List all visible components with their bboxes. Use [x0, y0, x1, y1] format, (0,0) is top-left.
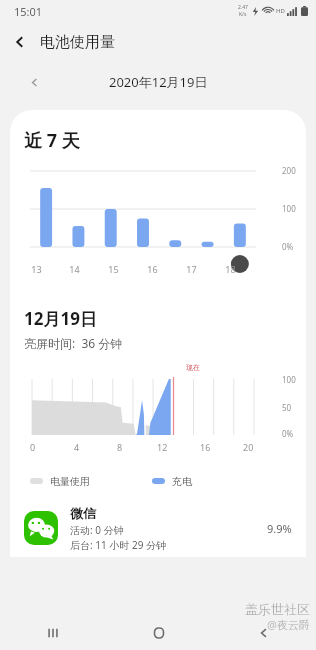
- staticText: 9.9%: [267, 521, 292, 536]
- staticText: 充电: [172, 475, 192, 488]
- staticText: 微信: [70, 505, 96, 521]
- staticText: 亮屏时间: 36 分钟: [24, 335, 123, 351]
- staticText: 0: [30, 441, 36, 453]
- staticText: 16: [200, 441, 211, 453]
- staticText: 电池使用量: [40, 33, 115, 52]
- staticText: 100: [282, 203, 296, 214]
- staticText: 后台: 11 小时 29 分钟: [70, 538, 166, 552]
- staticText: 16: [147, 263, 158, 275]
- button[interactable]: Back: [211, 616, 316, 650]
- staticText: 2.47: [238, 4, 248, 11]
- staticText: 8: [117, 441, 123, 453]
- staticText: 13: [31, 263, 42, 275]
- button[interactable]: Previous day: [22, 70, 46, 94]
- button[interactable]: Recents: [0, 616, 106, 650]
- staticText: 12: [157, 441, 168, 453]
- button[interactable]: 微信: [10, 499, 306, 557]
- staticText: 活动: 0 分钟: [70, 523, 124, 537]
- staticText: 4: [74, 441, 80, 453]
- staticText: K/s: [239, 11, 247, 18]
- staticText: 近 7 天: [24, 128, 80, 153]
- staticText: 15:01: [14, 4, 43, 19]
- staticText: 盖乐世社区: [245, 601, 310, 617]
- button[interactable]: Back: [0, 22, 40, 62]
- staticText: 2020年12月19日: [109, 73, 208, 91]
- staticText: 12月19日: [24, 307, 97, 330]
- staticText: 0%: [282, 428, 294, 439]
- staticText: 200: [282, 165, 296, 176]
- staticText: 20: [243, 441, 254, 453]
- staticText: @夜云爵: [267, 617, 310, 632]
- staticText: HD: [276, 7, 285, 15]
- staticText: 18: [225, 263, 236, 275]
- staticText: 100: [282, 374, 296, 385]
- staticText: 电量使用: [50, 475, 90, 488]
- staticText: 50: [282, 402, 292, 413]
- staticText: 现在: [186, 363, 200, 372]
- staticText: 17: [186, 263, 197, 275]
- staticText: 0%: [282, 241, 294, 252]
- button[interactable]: Home: [106, 616, 211, 650]
- staticText: 14: [69, 263, 80, 275]
- staticText: 15: [108, 263, 119, 275]
